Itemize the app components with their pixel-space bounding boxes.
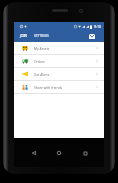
staticText: Orders: [34, 59, 45, 63]
staticText: 9:10: [94, 24, 102, 29]
button[interactable]: Home: [53, 147, 65, 159]
button[interactable]: JOIN: [14, 31, 31, 41]
staticText: JOIN: [20, 34, 28, 38]
button[interactable]: Get Alerts: [14, 68, 104, 81]
staticText: SETTINGS: [34, 34, 49, 38]
staticText: My Assets: [34, 46, 50, 50]
button[interactable]: My Assets: [14, 42, 104, 55]
button[interactable]: SETTINGS: [31, 31, 52, 41]
staticText: Share with friends: [34, 85, 63, 89]
staticText: Get Alerts: [34, 72, 50, 76]
button[interactable]: Share with friends: [14, 81, 104, 94]
button[interactable]: Back: [28, 147, 40, 159]
button[interactable]: Recent apps: [79, 147, 91, 159]
button[interactable]: Messages: [87, 32, 96, 41]
button[interactable]: Orders: [14, 55, 104, 68]
